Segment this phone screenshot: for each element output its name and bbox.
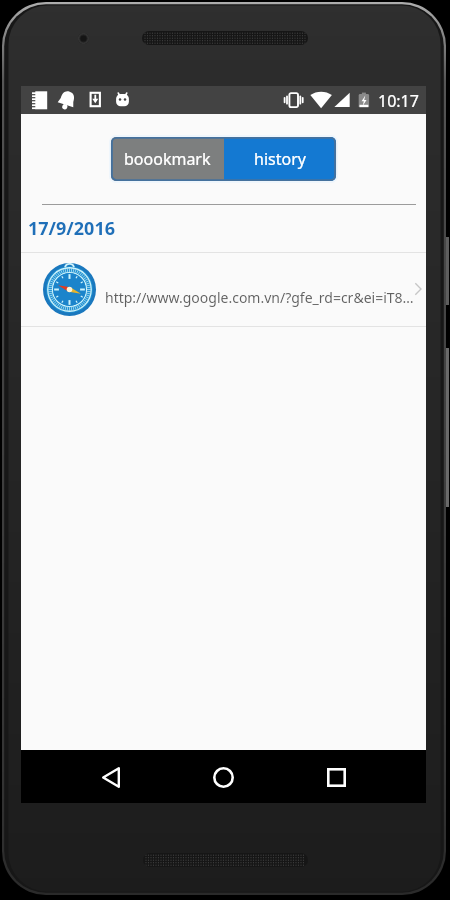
staticText: http://www.google.com.vn/?gfe_rd=cr&ei=i…: [105, 288, 415, 307]
button[interactable]: Home: [203, 757, 243, 797]
button[interactable]: boookmark: [111, 137, 224, 181]
button[interactable]: Recents: [316, 757, 356, 797]
button[interactable]: Back: [91, 757, 131, 797]
button[interactable]: http://www.google.com.vn/?gfe_rd=cr&ei=i…: [21, 253, 426, 326]
staticText: boookmark: [124, 148, 211, 170]
staticText: 17/9/2016: [28, 216, 116, 241]
staticText: 10:17: [378, 90, 419, 112]
staticText: history: [254, 148, 306, 170]
button[interactable]: history: [224, 137, 336, 181]
